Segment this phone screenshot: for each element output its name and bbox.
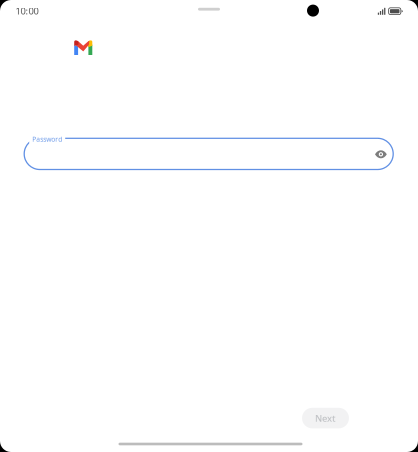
button[interactable]: Password	[24, 138, 393, 169]
button[interactable]: Next	[302, 408, 349, 428]
button[interactable]: Show password	[368, 141, 394, 167]
staticText: 10:00	[15, 5, 38, 17]
staticText: Next	[315, 412, 336, 424]
staticText: Password	[32, 135, 62, 144]
